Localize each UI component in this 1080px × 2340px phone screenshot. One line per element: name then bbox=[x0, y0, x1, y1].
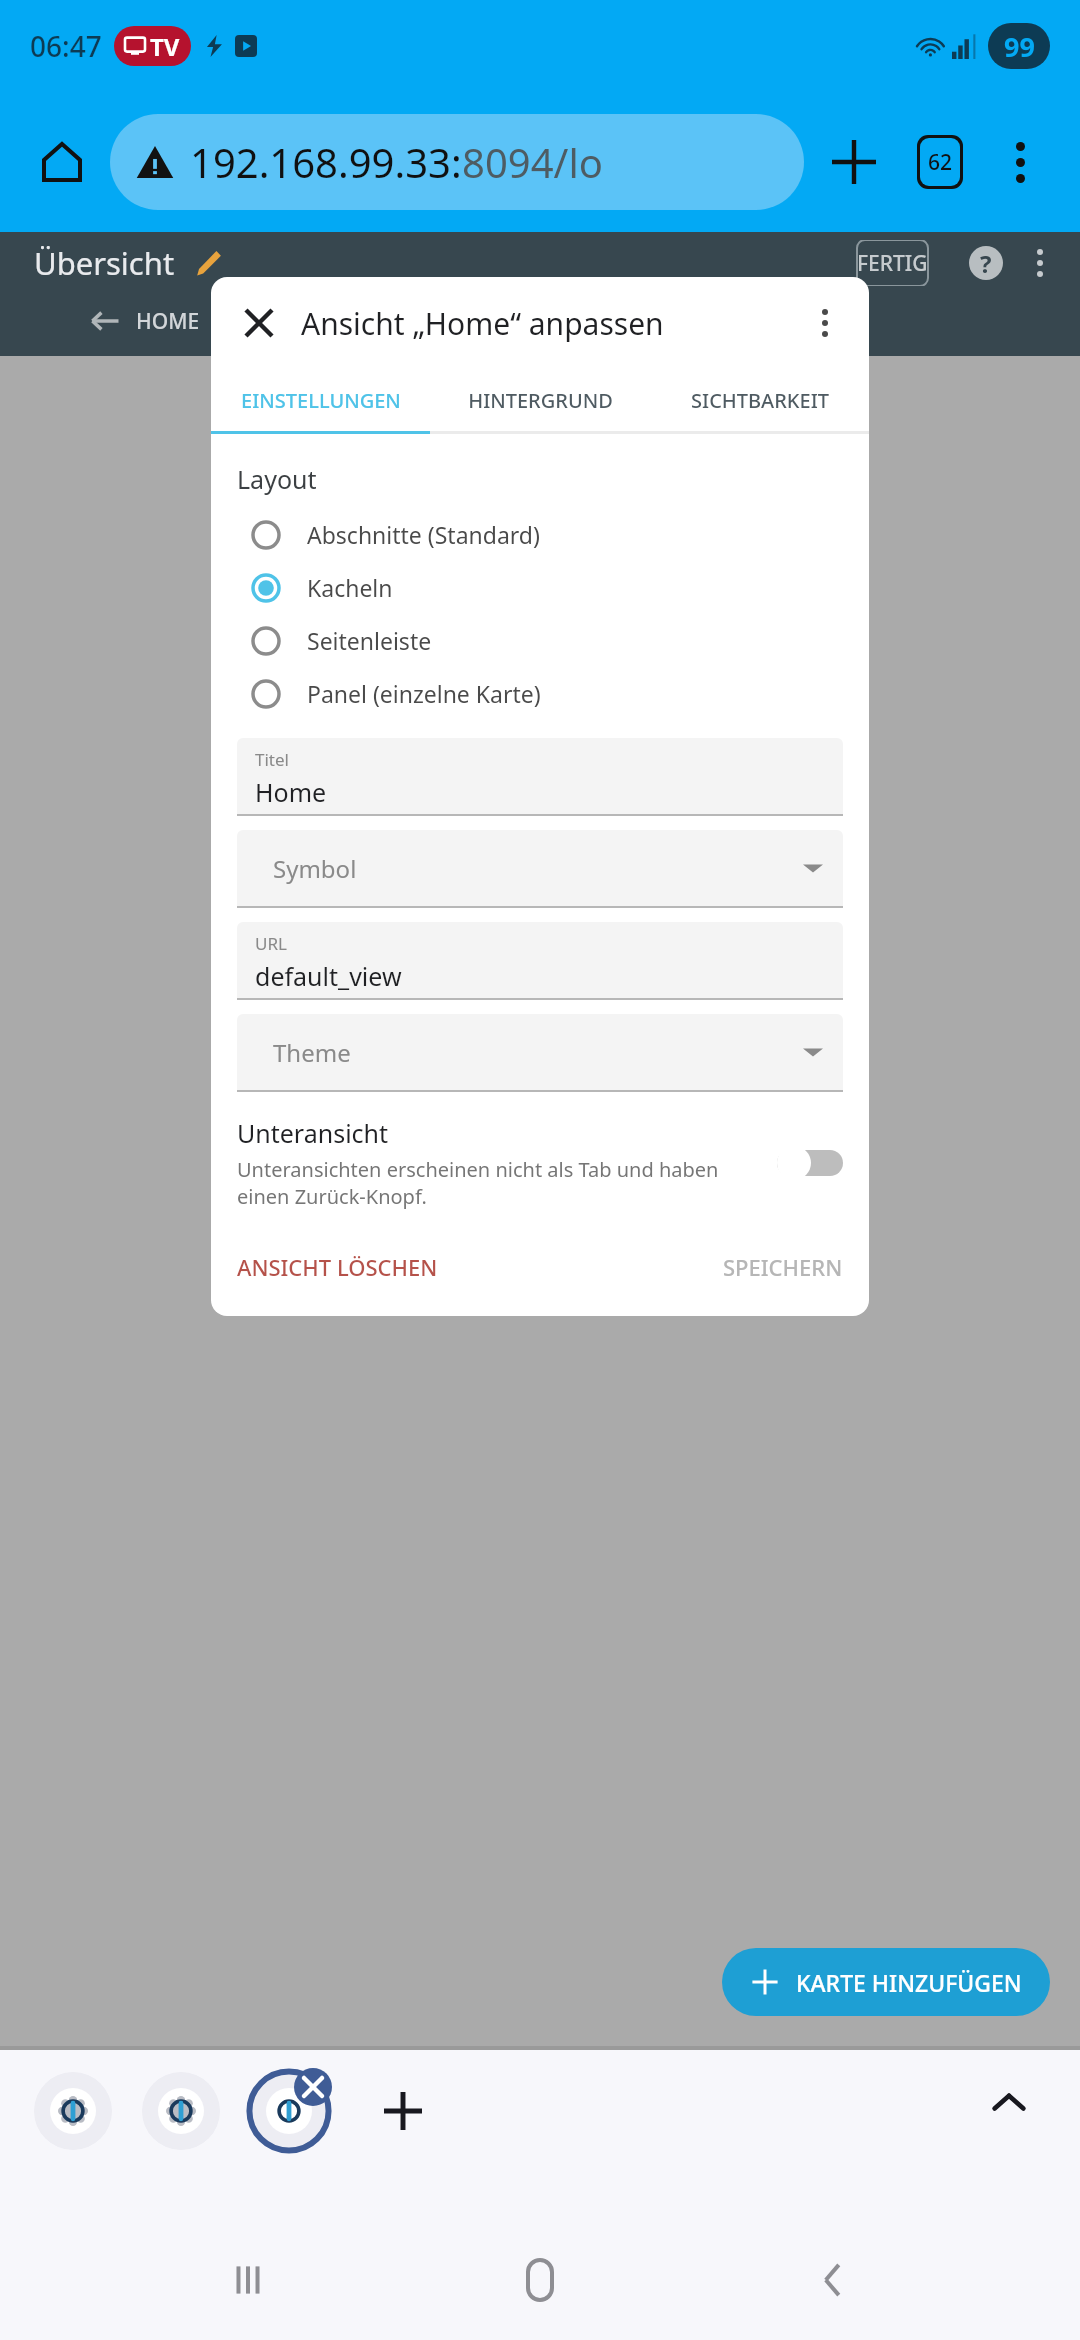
button[interactable]: SPEICHERN bbox=[715, 1244, 851, 1290]
staticText: URL bbox=[255, 932, 287, 955]
button[interactable]: Home bbox=[26, 126, 98, 198]
button[interactable]: Tab bbox=[30, 2068, 116, 2154]
button[interactable]: More bbox=[1018, 241, 1062, 285]
staticText: HINTERGRUND bbox=[468, 387, 613, 414]
staticText: SICHTBARKEIT bbox=[691, 387, 829, 414]
button[interactable]: Current tab bbox=[246, 2068, 332, 2154]
staticText: FERTIG bbox=[857, 249, 928, 278]
staticText: 8094/lo bbox=[462, 135, 603, 189]
button[interactable]: Theme bbox=[237, 1014, 843, 1090]
button[interactable]: URL bbox=[237, 922, 843, 998]
staticText: Übersicht bbox=[34, 242, 175, 284]
button[interactable]: Tab bbox=[138, 2068, 224, 2154]
staticText: 06:47 bbox=[30, 27, 102, 65]
staticText: Kacheln bbox=[307, 572, 393, 603]
button[interactable]: Seitenleiste bbox=[211, 614, 869, 667]
staticText: default_view bbox=[255, 959, 402, 993]
staticText: Symbol bbox=[273, 852, 357, 885]
button[interactable]: KARTE HINZUFÜGEN bbox=[722, 1948, 1050, 2016]
button[interactable]: Kacheln bbox=[211, 561, 869, 614]
button[interactable]: New tab bbox=[368, 2076, 438, 2146]
button[interactable]: Unteransicht bbox=[237, 1116, 843, 1210]
staticText: SPEICHERN bbox=[723, 1252, 843, 1282]
staticText: KARTE HINZUFÜGEN bbox=[796, 1967, 1022, 1998]
button[interactable]: Back bbox=[788, 2235, 878, 2325]
staticText: ? bbox=[980, 247, 992, 280]
button[interactable]: More options bbox=[986, 128, 1054, 196]
button[interactable]: More options bbox=[801, 299, 849, 347]
staticText: Titel bbox=[255, 748, 289, 771]
staticText: ANSICHT LÖSCHEN bbox=[237, 1252, 438, 1282]
button[interactable]: SICHTBARKEIT bbox=[650, 369, 869, 431]
staticText: Layout bbox=[237, 462, 317, 496]
staticText: HOME bbox=[136, 307, 200, 336]
button[interactable]: Recents bbox=[203, 2235, 293, 2325]
button[interactable]: EINSTELLUNGEN bbox=[211, 369, 431, 431]
button[interactable]: Close bbox=[233, 297, 285, 349]
button[interactable]: Tabs: 62 bbox=[904, 126, 976, 198]
button[interactable]: Home bbox=[495, 2235, 585, 2325]
button[interactable]: Expand bbox=[974, 2068, 1044, 2138]
staticText: 99 bbox=[1004, 28, 1035, 65]
staticText: Seitenleiste bbox=[307, 625, 432, 656]
button[interactable]: Help bbox=[962, 239, 1010, 287]
button[interactable]: Close tab bbox=[294, 2068, 332, 2106]
staticText: Theme bbox=[273, 1036, 351, 1069]
staticText: Home bbox=[255, 775, 327, 809]
button[interactable] bbox=[90, 306, 120, 336]
button[interactable]: ANSICHT LÖSCHEN bbox=[229, 1244, 446, 1290]
staticText: Abschnitte (Standard) bbox=[307, 519, 540, 550]
button[interactable]: Panel (einzelne Karte) bbox=[211, 667, 869, 720]
staticText: EINSTELLUNGEN bbox=[241, 387, 401, 414]
button[interactable]: HINTERGRUND bbox=[431, 369, 650, 431]
button[interactable]: Titel bbox=[237, 738, 843, 814]
button[interactable]: Symbol bbox=[237, 830, 843, 906]
button[interactable]: 192.168.99.33: bbox=[110, 114, 804, 210]
button[interactable]: Abschnitte (Standard) bbox=[211, 508, 869, 561]
staticText: TV bbox=[150, 30, 180, 63]
staticText: 62 bbox=[928, 148, 953, 177]
button[interactable]: New tab bbox=[818, 126, 890, 198]
staticText: Unteransicht bbox=[237, 1116, 389, 1150]
button[interactable]: FERTIG bbox=[837, 240, 948, 286]
staticText: Unteransichten erscheinen nicht als Tab … bbox=[237, 1156, 761, 1210]
staticText: 192.168.99.33: bbox=[190, 135, 462, 189]
staticText: Panel (einzelne Karte) bbox=[307, 678, 541, 709]
staticText: Ansicht „Home“ anpassen bbox=[301, 303, 664, 344]
